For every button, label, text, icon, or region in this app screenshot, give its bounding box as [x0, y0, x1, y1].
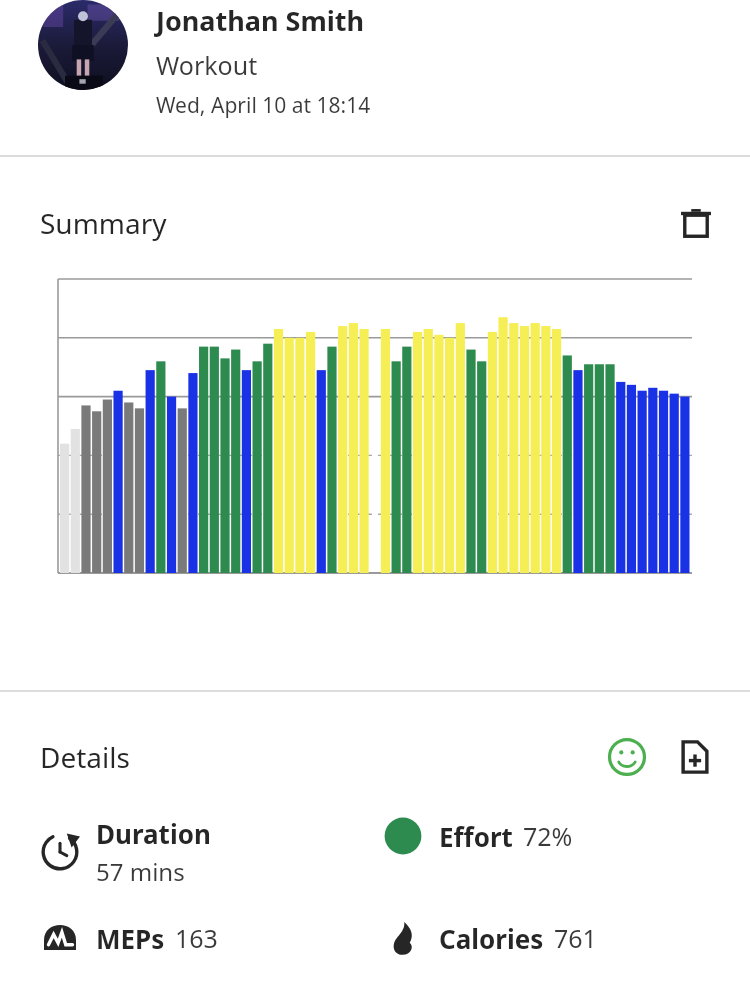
staticText: Details [40, 738, 130, 776]
button[interactable]: Rate workout feeling [604, 734, 650, 780]
button[interactable]: MEPs [40, 918, 218, 958]
staticText: Summary [40, 204, 167, 242]
staticText: Jonathan Smith [156, 2, 365, 39]
staticText: Wed, April 10 at 18:14 [156, 91, 371, 120]
button[interactable]: Add note [672, 734, 718, 780]
staticText: Effort [439, 819, 513, 854]
button[interactable]: Effort [383, 816, 573, 856]
button[interactable]: Delete workout [674, 201, 718, 245]
button[interactable]: Duration [40, 816, 211, 888]
staticText: 57 mins [96, 855, 185, 888]
staticText: Calories [439, 921, 544, 956]
staticText: 163 [175, 921, 218, 955]
staticText: Workout [156, 48, 258, 82]
button[interactable]: Calories [383, 918, 597, 958]
staticText: 761 [554, 921, 597, 955]
staticText: MEPs [96, 921, 165, 956]
staticText: Duration [96, 816, 211, 851]
staticText: 72% [523, 819, 573, 853]
